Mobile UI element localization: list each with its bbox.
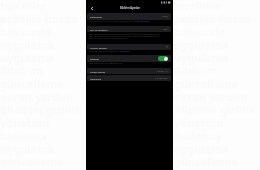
staticText: Hakkında bbox=[90, 77, 102, 80]
button[interactable]: Bildirim bbox=[87, 55, 171, 62]
staticText: Açık bbox=[163, 28, 168, 31]
staticText: Gizlilik Bilgisi bbox=[90, 70, 106, 73]
staticText: Tüm bildirimleri açıp kapatabilirsiniz bbox=[89, 62, 123, 65]
staticText: Arayüz Teması bbox=[90, 46, 107, 49]
button[interactable]: Back bbox=[89, 6, 94, 11]
staticText: Koyu veya açık temayı seçmek için dokunu… bbox=[89, 50, 130, 53]
staticText: Bildirim geldiginde calinacak sesi ve ti… bbox=[89, 33, 163, 40]
staticText: Bildirim bbox=[90, 57, 100, 60]
staticText: Uygulama bildirimlerini buradan yönetebi… bbox=[89, 20, 150, 23]
button[interactable]: Gizlilik Bilgisi bbox=[87, 68, 171, 74]
button[interactable]: Arayüz Teması bbox=[87, 44, 171, 50]
staticText: 3 Eylül 2025 bbox=[155, 77, 168, 80]
button[interactable]: Hakkında bbox=[87, 75, 171, 81]
staticText: Yönet bbox=[162, 15, 168, 18]
staticText: Bildirimler bbox=[90, 15, 103, 18]
staticText: Bildirim Ayarları bbox=[120, 6, 140, 10]
button[interactable]: Ses ve Titreşim bbox=[87, 26, 171, 32]
staticText: Sürüm 1.4 bbox=[157, 70, 168, 73]
staticText: Ses ve Titreşim bbox=[90, 28, 108, 31]
button[interactable]: Bildirimler bbox=[87, 13, 171, 20]
